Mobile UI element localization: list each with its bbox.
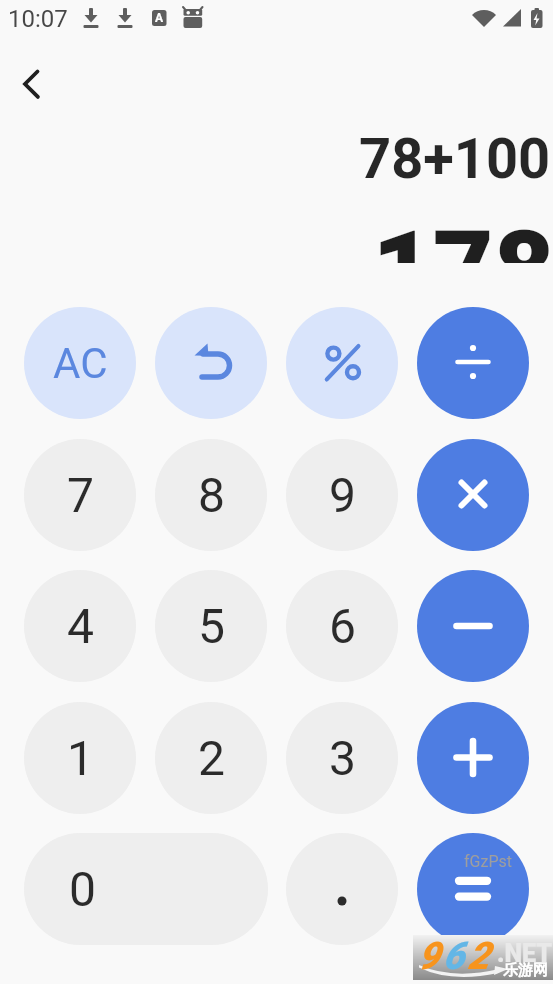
button[interactable]: 9 bbox=[286, 439, 398, 551]
button[interactable] bbox=[286, 307, 398, 419]
button[interactable]: 7 bbox=[24, 439, 136, 551]
button[interactable]: 9 bbox=[413, 935, 553, 980]
staticText: 178 bbox=[372, 209, 553, 263]
button[interactable] bbox=[286, 833, 398, 945]
button[interactable]: 5 bbox=[155, 570, 267, 682]
button[interactable]: 4 bbox=[24, 570, 136, 682]
staticText: .NET bbox=[497, 939, 553, 968]
button[interactable] bbox=[417, 570, 529, 682]
staticText: 6 bbox=[443, 934, 465, 979]
staticText: 2 bbox=[468, 934, 490, 979]
button[interactable] bbox=[417, 833, 529, 945]
staticText: 6 bbox=[329, 598, 356, 654]
button[interactable]: 3 bbox=[286, 702, 398, 814]
button[interactable]: AC bbox=[24, 307, 136, 419]
button[interactable]: 8 bbox=[155, 439, 267, 551]
button[interactable] bbox=[417, 702, 529, 814]
staticText: 9 bbox=[418, 934, 440, 979]
button[interactable]: 1 bbox=[24, 702, 136, 814]
staticText: 9 bbox=[329, 467, 356, 523]
staticText: A bbox=[155, 11, 164, 25]
staticText: 7 bbox=[67, 467, 94, 523]
button[interactable]: 6 bbox=[286, 570, 398, 682]
staticText: 3 bbox=[329, 730, 356, 786]
staticText: 4 bbox=[67, 598, 94, 654]
button[interactable]: 2 bbox=[155, 702, 267, 814]
button[interactable]: 0 bbox=[24, 833, 268, 945]
staticText: 1 bbox=[67, 730, 94, 786]
staticText: 5 bbox=[198, 598, 225, 654]
staticText: 78+100 bbox=[359, 126, 551, 192]
staticText: 8 bbox=[198, 467, 225, 523]
staticText: 10:07 bbox=[8, 5, 68, 33]
staticText: 乐游网 bbox=[503, 961, 548, 980]
button[interactable] bbox=[417, 307, 529, 419]
staticText: fGzPst bbox=[464, 852, 512, 871]
button[interactable] bbox=[10, 62, 54, 106]
staticText: 0 bbox=[69, 861, 96, 917]
staticText: AC bbox=[53, 339, 108, 388]
button[interactable] bbox=[417, 439, 529, 551]
button[interactable] bbox=[155, 307, 267, 419]
staticText: 2 bbox=[198, 730, 225, 786]
